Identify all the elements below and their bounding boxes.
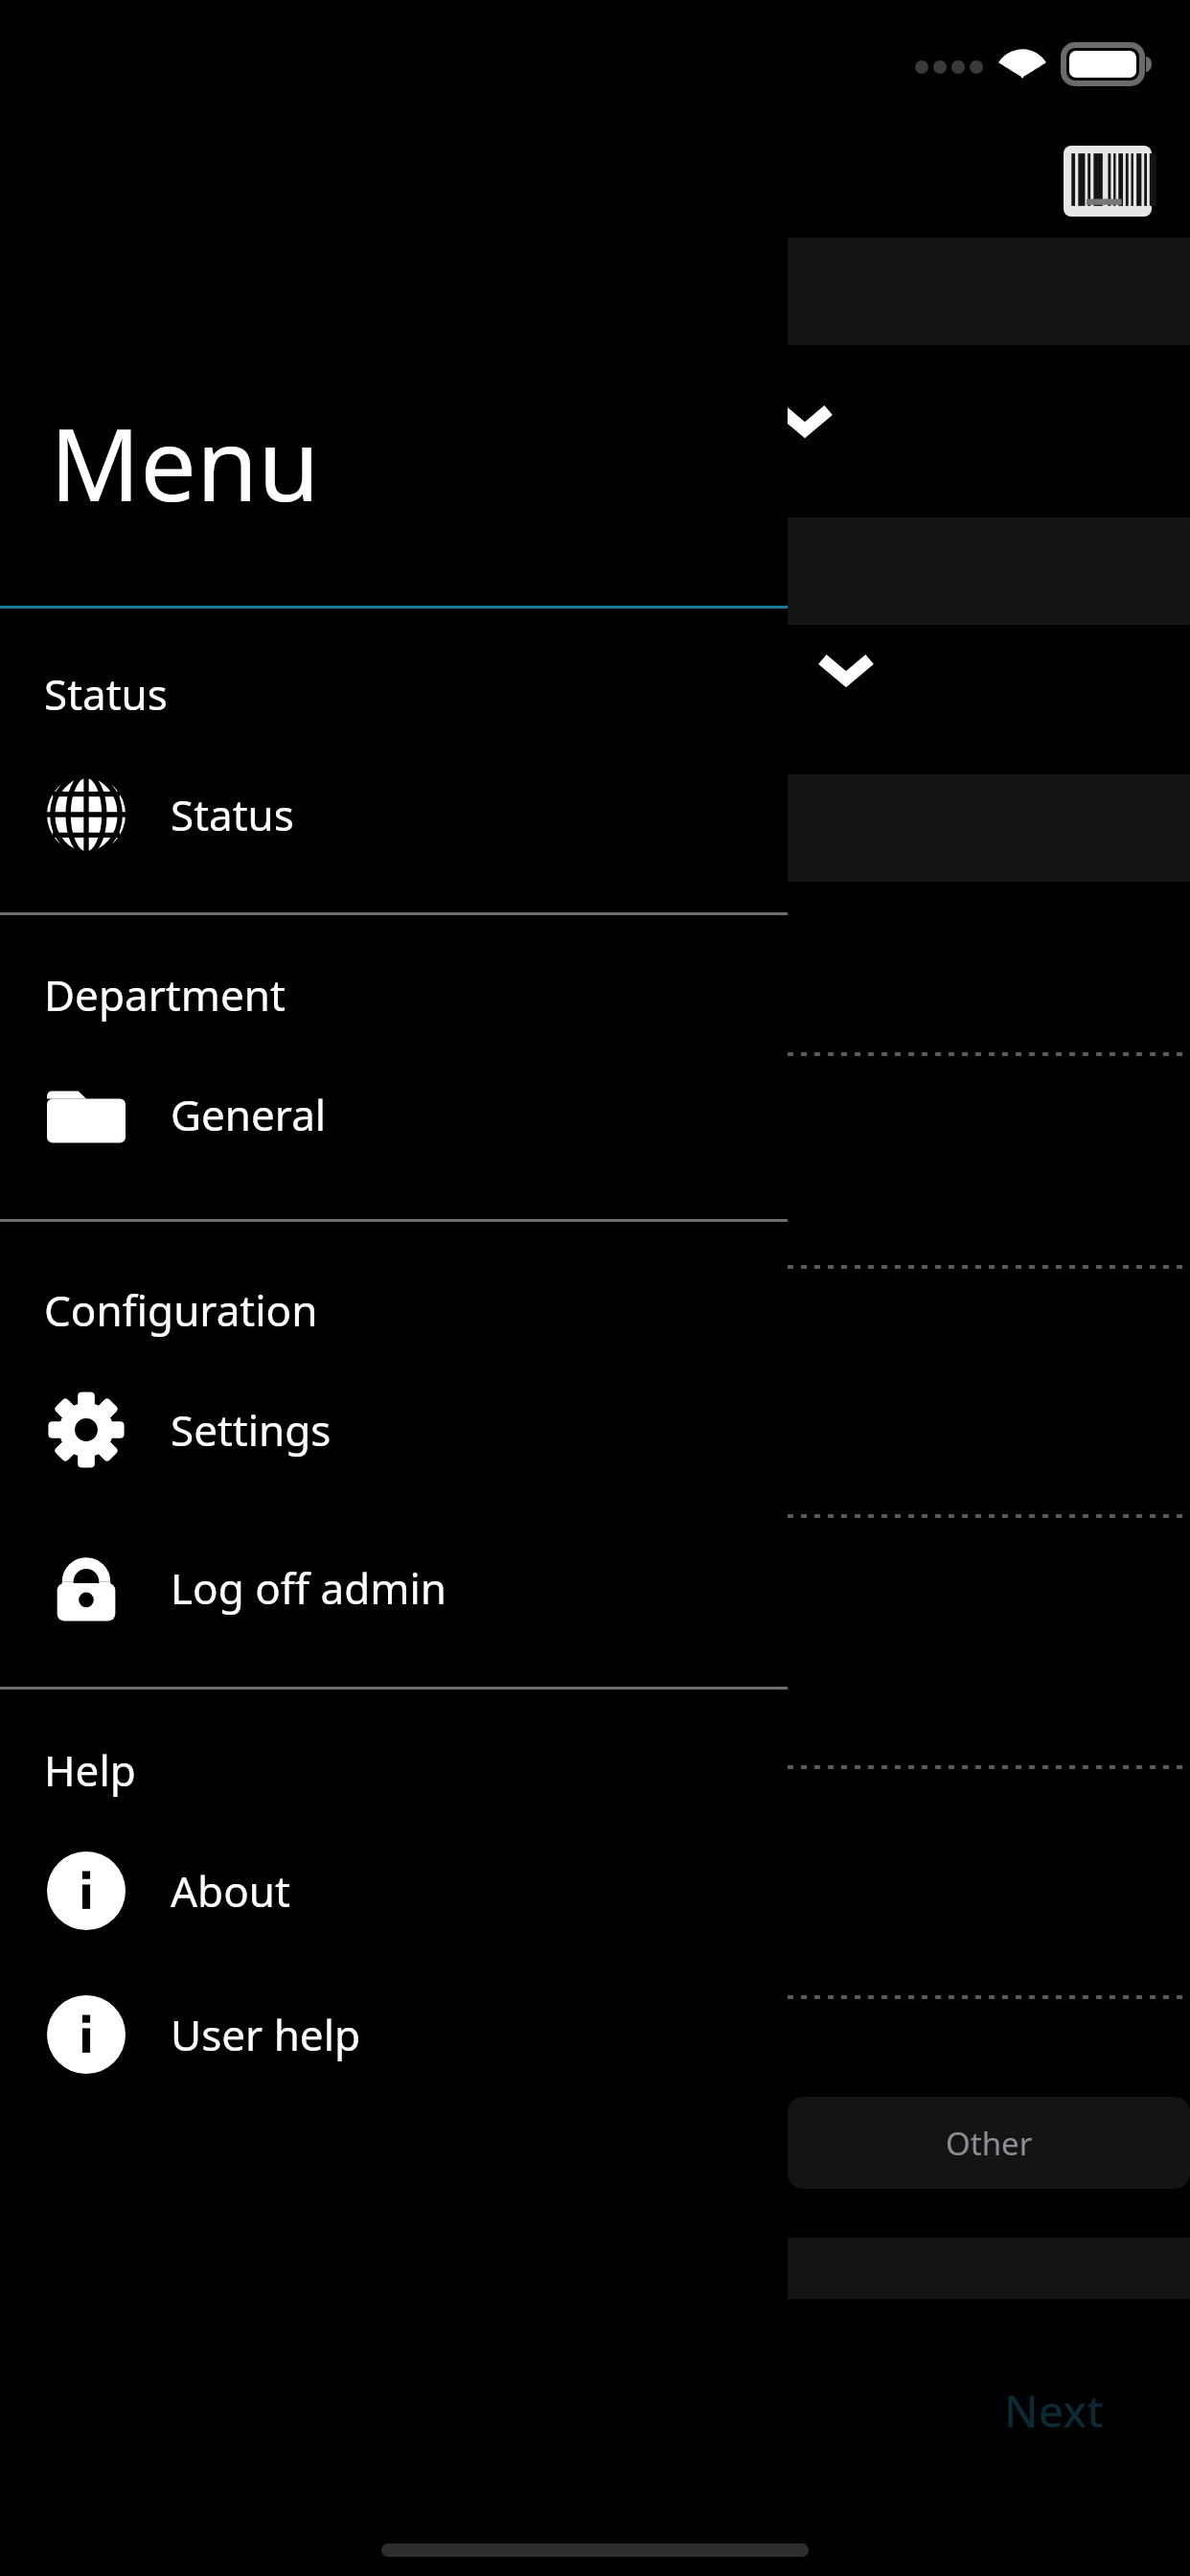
button[interactable]: Scan barcode — [1064, 146, 1152, 217]
button[interactable]: Next — [1004, 2380, 1104, 2441]
button[interactable]: Status — [0, 757, 788, 872]
staticText: Configuration — [44, 1281, 318, 1339]
staticText: About — [171, 1862, 290, 1920]
staticText: Menu — [50, 395, 320, 531]
button[interactable]: Log off admin — [0, 1530, 788, 1645]
button[interactable]: User help — [0, 1977, 788, 2092]
staticText: Log off admin — [171, 1559, 446, 1617]
staticText: Other — [946, 2122, 1033, 2165]
button[interactable]: Other — [788, 2097, 1190, 2189]
button[interactable]: General — [0, 1057, 788, 1172]
button[interactable]: About — [0, 1833, 788, 1948]
staticText: Department — [44, 966, 286, 1023]
staticText: Status — [44, 665, 168, 723]
staticText: Next — [1004, 2380, 1104, 2441]
staticText: Help — [44, 1741, 136, 1799]
staticText: Settings — [171, 1401, 332, 1459]
staticText: Status — [171, 786, 294, 843]
button[interactable]: Settings — [0, 1372, 788, 1487]
staticText: User help — [171, 2006, 361, 2063]
staticText: General — [171, 1086, 327, 1143]
